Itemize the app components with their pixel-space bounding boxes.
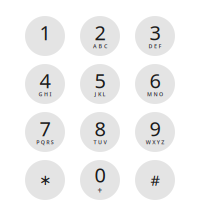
button[interactable]: 1 xyxy=(25,16,65,56)
staticText: DEF xyxy=(148,43,161,50)
staticText: ABC xyxy=(93,43,107,50)
staticText: 1 xyxy=(39,19,50,46)
staticText: 6 xyxy=(149,67,160,94)
staticText: 2 xyxy=(94,19,105,46)
staticText: 5 xyxy=(94,67,105,94)
button[interactable]: 4 xyxy=(25,64,65,104)
button[interactable]: 2 xyxy=(80,16,120,56)
staticText: PQRS xyxy=(36,139,54,146)
button[interactable]: 9 xyxy=(135,112,175,152)
button[interactable]: 7 xyxy=(25,112,65,152)
button[interactable]: 3 xyxy=(135,16,175,56)
staticText: 4 xyxy=(39,67,50,94)
button[interactable]: 5 xyxy=(80,64,120,104)
staticText: + xyxy=(97,185,102,196)
staticText: 9 xyxy=(149,115,160,142)
staticText: 0 xyxy=(94,161,105,188)
staticText: JKL xyxy=(94,91,105,98)
staticText: ∗ xyxy=(39,172,51,188)
staticText: 8 xyxy=(94,115,105,142)
staticText: WXYZ xyxy=(146,139,164,146)
staticText: MNO xyxy=(147,91,163,98)
staticText: 7 xyxy=(39,115,50,142)
button[interactable]: 8 xyxy=(80,112,120,152)
button[interactable]: 6 xyxy=(135,64,175,104)
staticText: # xyxy=(150,170,159,190)
button[interactable]: Pound xyxy=(135,160,175,200)
staticText: GHI xyxy=(38,91,51,98)
staticText: 3 xyxy=(149,19,160,46)
staticText: TUV xyxy=(93,139,106,146)
button[interactable]: Star xyxy=(25,160,65,200)
button[interactable]: 0 xyxy=(80,160,120,200)
